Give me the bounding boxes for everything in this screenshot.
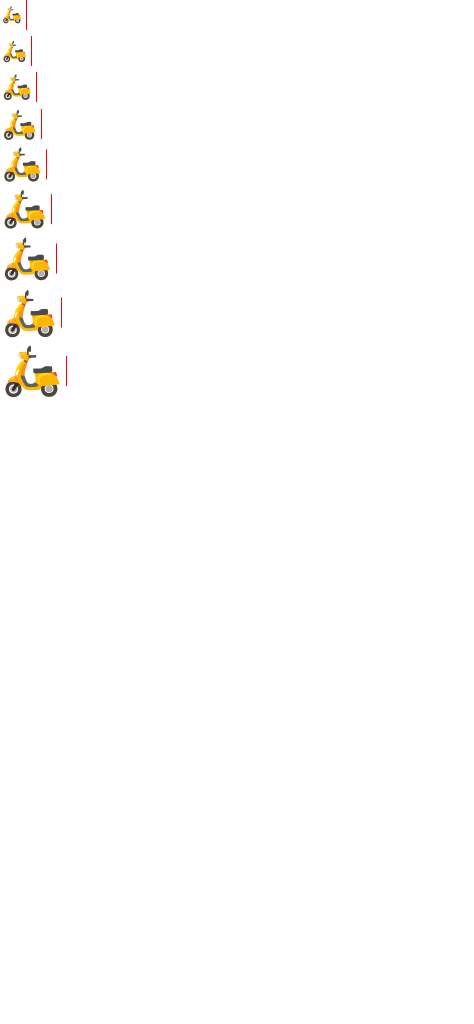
staticText: 🛵 [2,236,52,281]
staticText: 🛵 [2,73,32,101]
staticText: 🛵 [2,189,47,230]
staticText: 🛵 [2,344,62,398]
staticText: 🛵 [2,6,22,24]
staticText: 🛵 [2,108,37,140]
staticText: 🛵 [2,40,27,62]
staticText: 🛵 [2,146,42,183]
staticText: 🛵 [2,287,57,338]
